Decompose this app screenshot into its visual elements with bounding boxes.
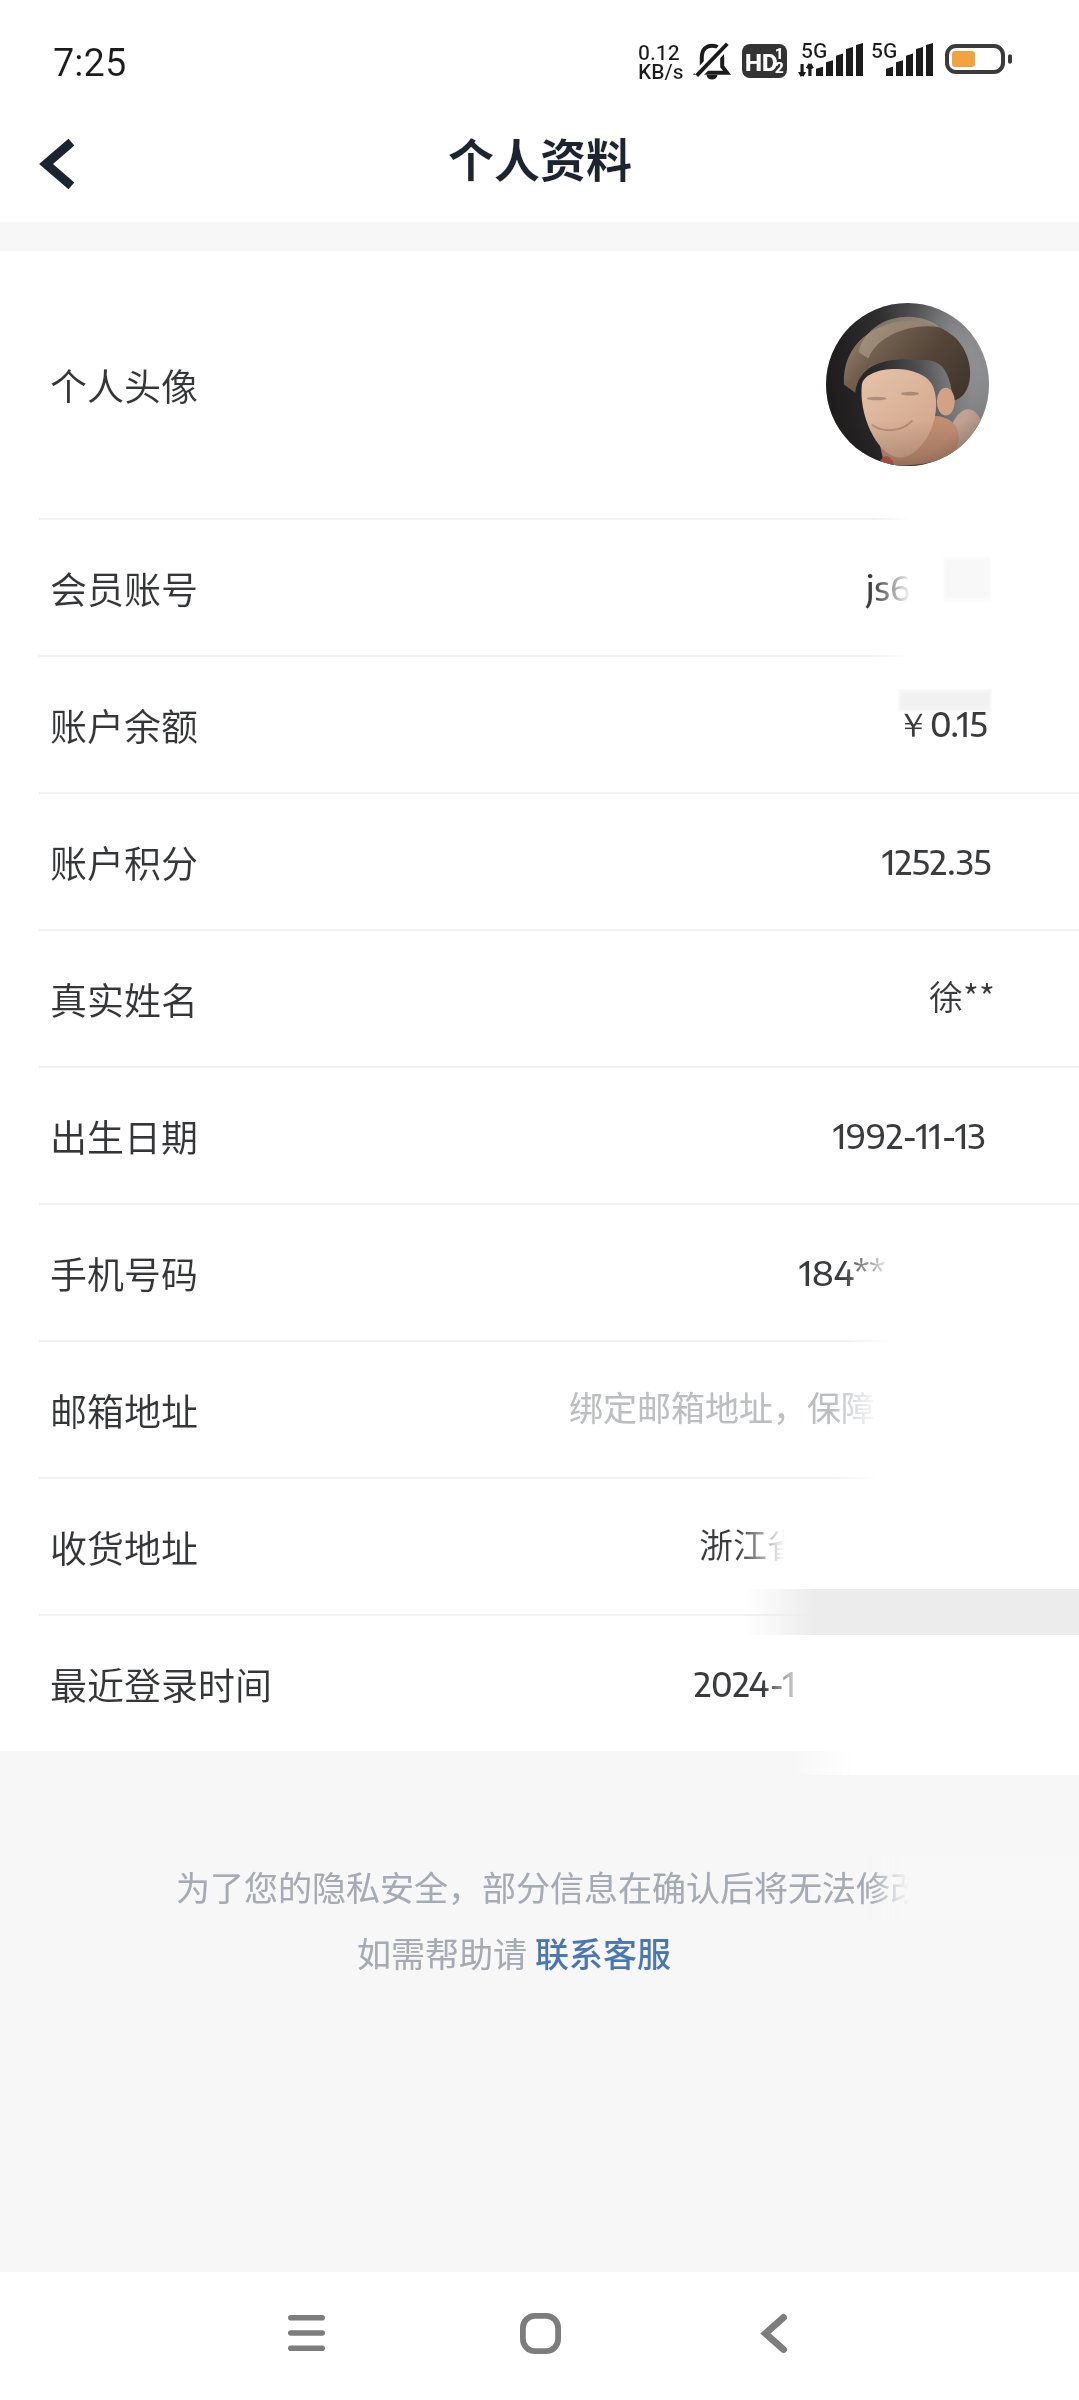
button[interactable]: Recent apps [236,2272,376,2400]
staticText: 184** [799,1251,886,1294]
button[interactable]: 最近登录时间 [0,1616,1079,1751]
staticText: 2 [775,59,784,77]
button[interactable]: 账户积分 [0,794,1079,929]
staticText: 最近登录时间 [50,1657,272,1711]
staticText: 5G [801,39,828,64]
staticText: 1252.35 [882,840,992,883]
staticText: 账户积分 [50,835,198,889]
staticText: 手机号码 [50,1246,198,1300]
staticText: 收货地址 [50,1520,198,1574]
button[interactable]: 出生日期 [0,1068,1079,1203]
button[interactable]: 邮箱地址 [0,1342,1079,1477]
staticText: 1 [775,45,784,63]
staticText: 联系客服 [535,1928,671,1977]
staticText: 如需帮助请 [357,1928,535,1977]
staticText: 绑定邮箱地址，保障 [569,1382,875,1431]
staticText: 1992-11-13 [833,1114,986,1157]
staticText: 7:25 [53,41,127,86]
button[interactable]: 收货地址 [0,1479,1079,1614]
staticText: 0.12 [638,41,680,66]
staticText: 浙江省 [699,1519,801,1568]
button[interactable]: 账户余额 [0,657,1079,792]
staticText: 账户余额 [50,698,198,752]
staticText: 个人资料 [448,124,632,191]
button[interactable]: 手机号码 [0,1205,1079,1340]
button[interactable]: 个人头像 [0,251,1079,518]
staticText: 个人头像 [50,358,198,412]
button[interactable]: 会员账号 [0,520,1079,655]
staticText: HD [745,49,778,77]
staticText: 会员账号 [50,561,198,615]
staticText: 2024-1 [694,1662,796,1705]
button[interactable]: 联系客服 [535,1928,671,1977]
staticText: ￥0.15 [896,702,988,747]
staticText: KB/s [638,60,684,85]
button[interactable]: Back [704,2272,844,2400]
staticText: 出生日期 [50,1109,198,1163]
staticText: 真实姓名 [50,972,198,1026]
staticText: js6 [866,566,911,609]
staticText: 5G [871,39,898,64]
button[interactable]: 真实姓名 [0,931,1079,1066]
staticText: 邮箱地址 [50,1383,198,1437]
staticText: 为了您的隐私安全，部分信息在确认后将无法修改 [176,1862,924,1911]
staticText: 徐** [929,971,995,1020]
button[interactable]: 返回 [0,110,108,222]
button[interactable]: Home [470,2272,610,2400]
